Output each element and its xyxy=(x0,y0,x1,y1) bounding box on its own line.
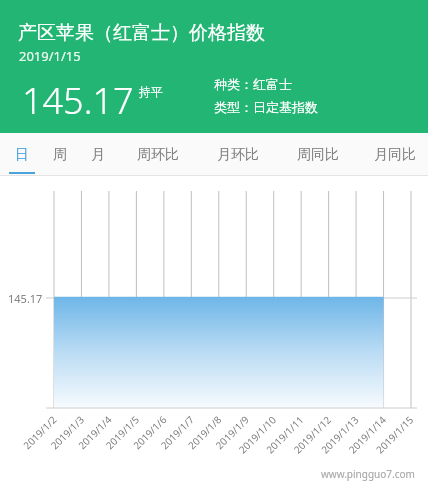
staticText: 2019/1/15 xyxy=(19,47,81,65)
staticText: 类型：日定基指数 xyxy=(214,99,318,115)
staticText: 月同比 xyxy=(374,146,416,164)
staticText: 周同比 xyxy=(297,146,339,164)
staticText: 日 xyxy=(15,146,29,164)
button[interactable]: 月同比 xyxy=(368,133,422,176)
button[interactable]: 周 xyxy=(47,133,73,176)
staticText: 月 xyxy=(91,146,105,164)
button[interactable]: 月 xyxy=(85,133,111,176)
staticText: 产区苹果（红富士）价格指数 xyxy=(18,21,265,45)
button[interactable]: 周同比 xyxy=(291,133,345,176)
staticText: 月环比 xyxy=(217,146,259,164)
staticText: 周环比 xyxy=(137,146,179,164)
staticText: 种类：红富士 xyxy=(214,76,292,92)
button[interactable]: 月环比 xyxy=(211,133,265,176)
staticText: 持平 xyxy=(139,84,163,99)
staticText: 周 xyxy=(53,146,67,164)
button[interactable]: 日 xyxy=(9,133,35,176)
staticText: 145.17 xyxy=(22,76,134,125)
button[interactable]: 周环比 xyxy=(131,133,185,176)
